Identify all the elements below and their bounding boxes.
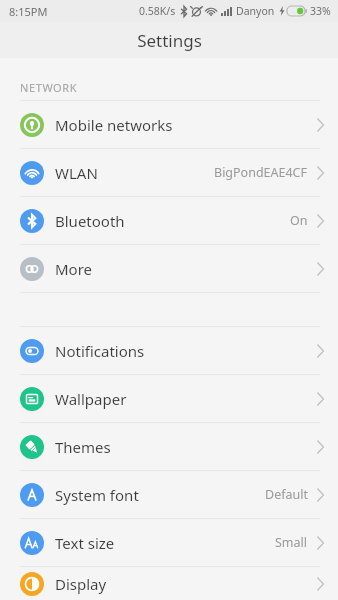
staticText: Display (55, 574, 107, 594)
button[interactable]: WLAN (0, 149, 338, 196)
staticText: Wallpaper (55, 389, 127, 409)
staticText: Notifications (55, 341, 145, 361)
staticText: Danyon (236, 4, 275, 18)
staticText: Mobile networks (55, 115, 173, 135)
staticText: Default (265, 486, 308, 503)
button[interactable]: Bluetooth (0, 197, 338, 244)
staticText: On (290, 212, 308, 229)
staticText: System font (55, 485, 139, 505)
staticText: Themes (55, 437, 111, 457)
staticText: 0.58K/s (139, 4, 176, 18)
button[interactable]: System font (0, 471, 338, 518)
button[interactable]: Mobile networks (0, 101, 338, 148)
button[interactable]: Display (0, 567, 338, 600)
staticText: 8:15PM (9, 4, 48, 19)
button[interactable]: Wallpaper (0, 375, 338, 422)
staticText: WLAN (55, 163, 98, 183)
staticText: Text size (55, 533, 115, 553)
staticText: BigPondEAE4CF (214, 164, 308, 181)
staticText: 33% (310, 4, 331, 18)
staticText: NETWORK (20, 80, 78, 95)
staticText: More (55, 259, 93, 279)
staticText: Bluetooth (55, 211, 125, 231)
button[interactable]: More (0, 245, 338, 292)
staticText: Settings (137, 29, 202, 52)
button[interactable]: Notifications (0, 327, 338, 374)
button[interactable]: Themes (0, 423, 338, 470)
staticText: Small (275, 534, 308, 551)
button[interactable]: Text size (0, 519, 338, 566)
